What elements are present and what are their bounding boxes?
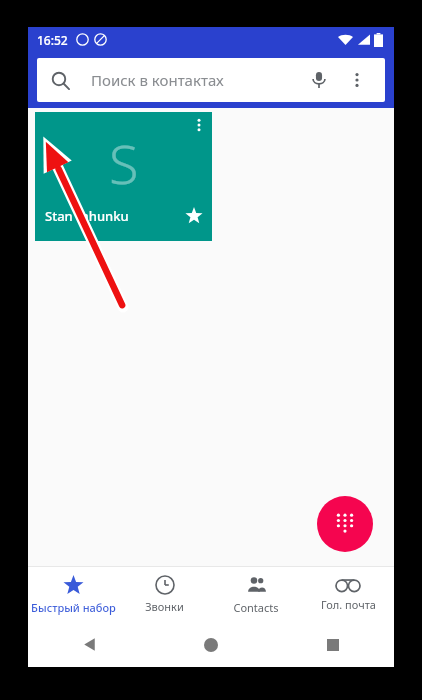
staticText: Звонки bbox=[145, 599, 184, 614]
staticText: 16:52 bbox=[37, 32, 68, 48]
button[interactable]: Звонки bbox=[119, 567, 210, 622]
button[interactable]: S bbox=[35, 112, 212, 241]
button[interactable]: Contact options bbox=[186, 112, 212, 138]
staticText: Contacts bbox=[233, 600, 279, 615]
button[interactable]: Favorite bbox=[185, 207, 203, 225]
button[interactable]: Home bbox=[150, 622, 272, 667]
staticText: Stan rahunku bbox=[45, 207, 129, 225]
button[interactable]: Поиск в контактах bbox=[37, 58, 385, 102]
button[interactable]: Быстрый набор bbox=[28, 567, 119, 622]
button[interactable]: Recents bbox=[272, 622, 394, 667]
staticText: S bbox=[109, 126, 139, 200]
button[interactable]: Dialpad bbox=[317, 496, 373, 552]
staticText: Поиск в контактах bbox=[91, 70, 224, 90]
button[interactable]: Гол. почта bbox=[302, 567, 394, 622]
button[interactable]: Back bbox=[28, 622, 150, 667]
button[interactable]: Voice search bbox=[305, 66, 333, 94]
button[interactable]: More options bbox=[343, 66, 371, 94]
staticText: Гол. почта bbox=[321, 597, 376, 612]
staticText: Быстрый набор bbox=[31, 600, 116, 615]
button[interactable]: Contacts bbox=[210, 567, 302, 622]
